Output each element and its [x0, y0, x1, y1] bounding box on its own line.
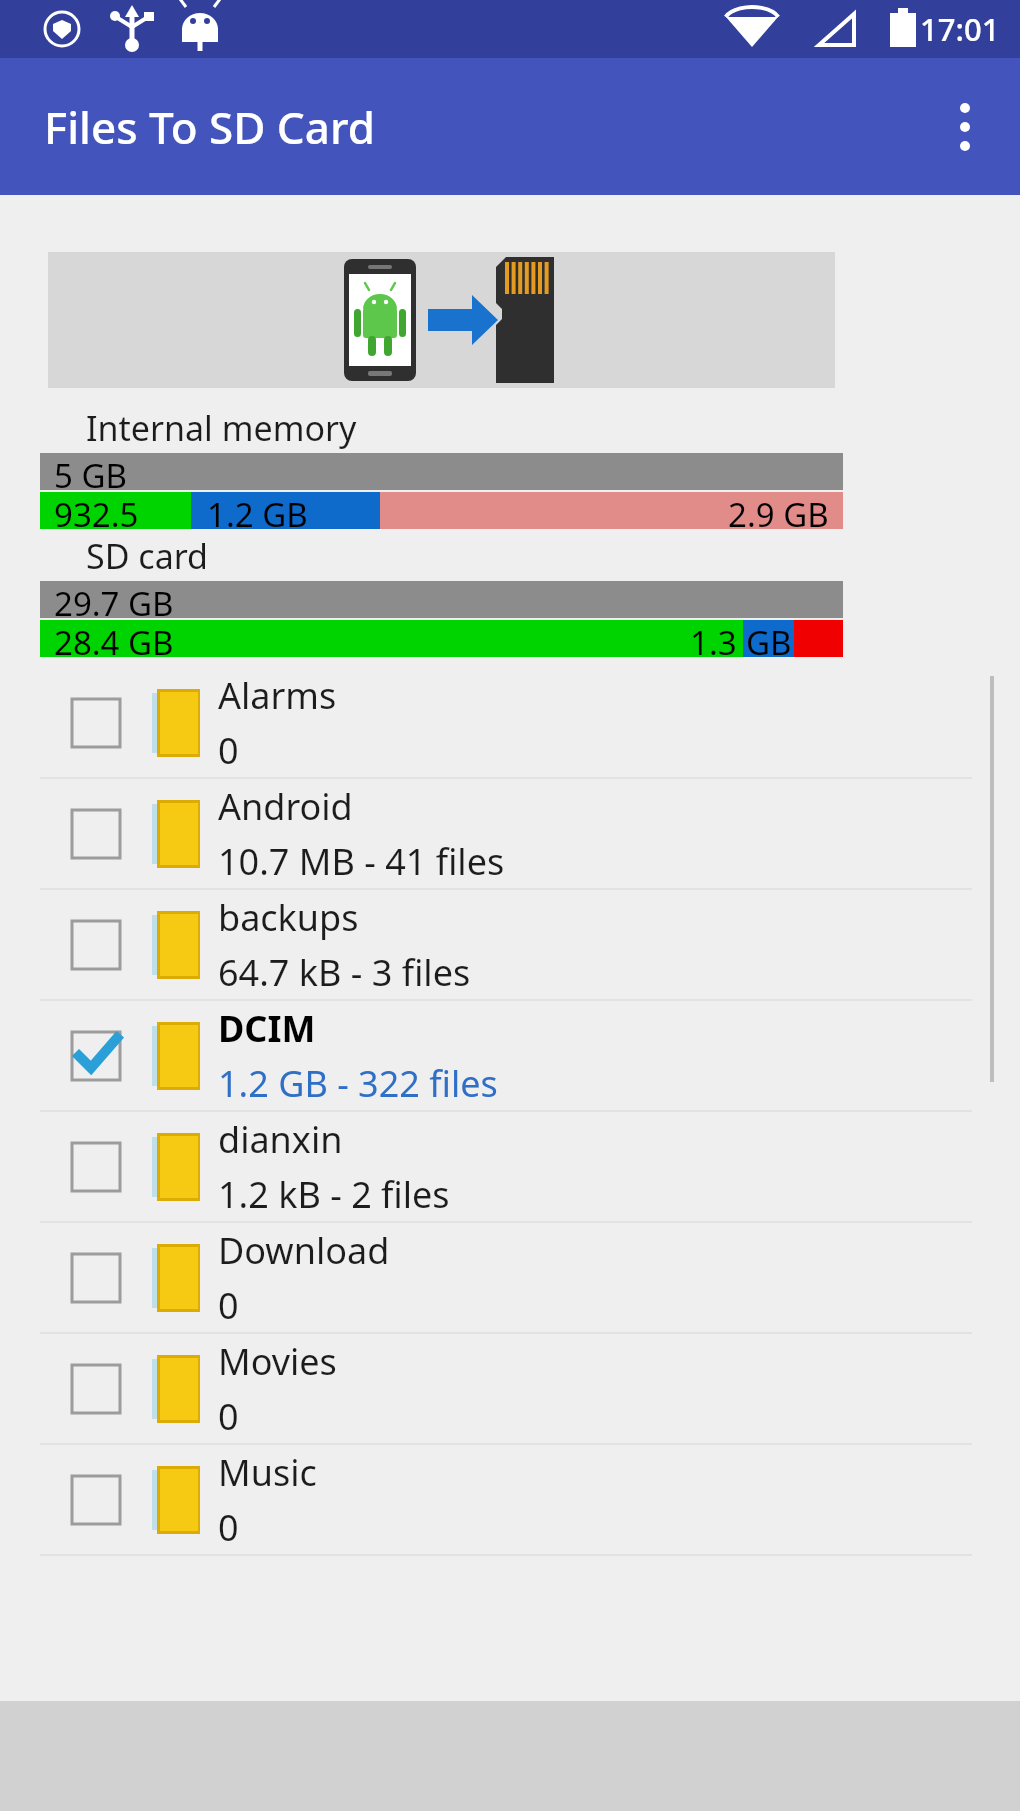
staticText: 1.2 kB - 2 files [218, 1170, 450, 1219]
staticText: 0 [218, 726, 239, 775]
staticText: GB [746, 620, 792, 657]
button[interactable]: Selected DCIM [0, 1001, 1020, 1110]
staticText: backups [218, 893, 359, 942]
staticText: SD card [86, 533, 208, 579]
staticText: 28.4 GB [54, 620, 174, 657]
staticText: 0 [218, 1503, 239, 1552]
button[interactable]: Select backups [68, 917, 124, 973]
button[interactable]: Select Alarms [68, 695, 124, 751]
staticText: Files To SD Card [44, 97, 375, 157]
staticText: 5 GB [54, 453, 127, 490]
staticText: 932.5 MB [54, 492, 191, 529]
staticText: Alarms [218, 671, 337, 720]
button[interactable]: Select Android [0, 779, 1020, 888]
button[interactable]: Select Music [0, 1445, 1020, 1554]
staticText: DCIM [218, 1004, 316, 1053]
button[interactable]: Select dianxin [0, 1112, 1020, 1221]
staticText: Android [218, 782, 353, 831]
staticText: 2.9 GB [728, 492, 829, 529]
staticText: 1.3 [690, 620, 737, 657]
button[interactable]: Selected DCIM [68, 1028, 124, 1084]
staticText: 29.7 GB [54, 581, 174, 618]
button[interactable]: Select dianxin [68, 1139, 124, 1195]
staticText: dianxin [218, 1115, 343, 1164]
staticText: 17:01 [920, 8, 1000, 50]
staticText: 1.2 GB - 322 files [218, 1059, 498, 1108]
staticText: 1.2 GB [207, 492, 308, 529]
button[interactable]: More options [920, 82, 1010, 172]
button[interactable]: Select Movies [68, 1361, 124, 1417]
staticText: Music [218, 1448, 317, 1497]
button[interactable]: Select backups [0, 890, 1020, 999]
staticText: 64.7 kB - 3 files [218, 948, 471, 997]
button[interactable]: Select Alarms [0, 668, 1020, 777]
staticText: Download [218, 1226, 390, 1275]
button[interactable]: Select Movies [0, 1334, 1020, 1443]
button[interactable]: Select Download [68, 1250, 124, 1306]
staticText: 0 [218, 1392, 239, 1441]
staticText: 0 [218, 1281, 239, 1330]
staticText: Movies [218, 1337, 337, 1386]
button[interactable]: Select Download [0, 1223, 1020, 1332]
button[interactable]: Transfer files to SD card [48, 252, 835, 388]
staticText: Internal memory [86, 405, 357, 451]
staticText: 10.7 MB - 41 files [218, 837, 505, 886]
button[interactable]: Select Android [68, 806, 124, 862]
button[interactable]: Select Music [68, 1472, 124, 1528]
